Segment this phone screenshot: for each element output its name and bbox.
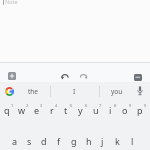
staticText: 9	[129, 103, 132, 108]
staticText: I	[73, 87, 76, 96]
staticText: w	[18, 104, 26, 116]
staticText: j	[101, 135, 104, 147]
staticText: you	[111, 87, 123, 96]
button[interactable]	[137, 86, 143, 97]
staticText: the	[28, 87, 39, 96]
staticText: h	[86, 135, 92, 147]
staticText: p	[137, 104, 143, 116]
staticText: a	[12, 135, 18, 147]
staticText: f	[57, 135, 61, 147]
staticText: y	[78, 104, 83, 116]
button[interactable]: o	[117, 102, 132, 118]
button[interactable]: w	[14, 102, 29, 118]
staticText: i	[109, 104, 112, 116]
staticText: q	[4, 104, 10, 116]
button[interactable]: f	[51, 133, 66, 149]
button[interactable]: I	[61, 84, 88, 98]
staticText: e	[34, 104, 40, 116]
staticText: 7	[99, 103, 102, 108]
button[interactable]: s	[22, 133, 37, 149]
staticText: 5	[70, 103, 73, 108]
staticText: 0	[144, 103, 147, 108]
staticText: d	[41, 135, 47, 147]
staticText: 4	[55, 103, 58, 108]
button[interactable]: k	[110, 133, 125, 149]
staticText: 3	[40, 103, 43, 108]
staticText: k	[115, 135, 120, 147]
button[interactable]: you	[103, 84, 130, 98]
staticText: g	[71, 135, 77, 147]
button[interactable]: e	[29, 102, 44, 118]
button[interactable]	[8, 72, 16, 80]
button[interactable]: p	[132, 102, 147, 118]
button[interactable]: i	[103, 102, 118, 118]
staticText: t	[64, 104, 68, 116]
staticText: Note	[5, 0, 18, 5]
staticText: 8	[114, 103, 117, 108]
button[interactable]: u	[88, 102, 103, 118]
button[interactable]: the	[20, 84, 47, 98]
staticText: u	[93, 104, 99, 116]
button[interactable]: d	[36, 133, 51, 149]
staticText: o	[122, 104, 128, 116]
button[interactable]: r	[44, 102, 59, 118]
staticText: 6	[85, 103, 88, 108]
staticText: r	[50, 104, 54, 116]
button[interactable]	[61, 73, 69, 80]
button[interactable]: h	[81, 133, 96, 149]
staticText: s	[27, 135, 32, 147]
button[interactable]: q	[0, 102, 14, 118]
button[interactable]: g	[66, 133, 81, 149]
button[interactable]: l	[125, 133, 140, 149]
button[interactable]: t	[58, 102, 73, 118]
button[interactable]	[134, 74, 142, 81]
button[interactable]	[80, 73, 88, 80]
button[interactable]: j	[95, 133, 110, 149]
staticText: 2	[26, 103, 29, 108]
button[interactable]: a	[7, 133, 22, 149]
staticText: l	[131, 135, 134, 147]
staticText: 1	[11, 103, 14, 108]
button[interactable]: y	[73, 102, 88, 118]
button[interactable]	[5, 87, 14, 96]
